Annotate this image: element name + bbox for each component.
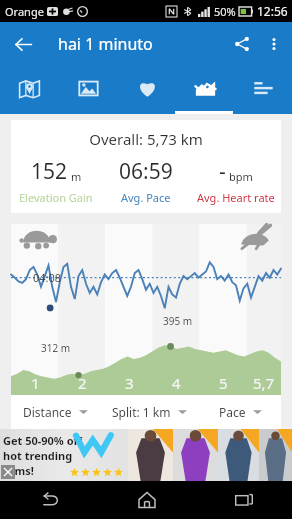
- button[interactable]: Recent apps: [195, 481, 292, 519]
- button[interactable]: Share: [225, 27, 259, 61]
- button[interactable]: Splits: [234, 66, 292, 114]
- staticText: 50%: [214, 4, 236, 19]
- button[interactable]: Split: 1 km: [100, 395, 199, 429]
- button[interactable]: Close ad: [1, 465, 15, 479]
- button[interactable]: Distance: [11, 395, 100, 429]
- staticText: hot trending: [3, 448, 73, 463]
- staticText: Split: 1 km: [112, 404, 171, 420]
- staticText: Orange: [5, 4, 44, 19]
- staticText: -: [219, 157, 226, 186]
- button[interactable]: Back: [6, 27, 40, 61]
- staticText: Get 50-90% off: [3, 433, 83, 448]
- staticText: Elevation Gain: [19, 190, 93, 205]
- staticText: 06:59: [119, 157, 173, 186]
- staticText: 312 m: [41, 341, 71, 355]
- staticText: 5: [219, 373, 228, 393]
- staticText: 395 m: [163, 314, 193, 328]
- button[interactable]: Back: [0, 481, 98, 519]
- staticText: 152: [31, 157, 68, 186]
- button[interactable]: Photos: [59, 66, 118, 114]
- staticText: hai 1 minuto: [58, 33, 153, 55]
- staticText: Overall: 5,73 km: [11, 129, 281, 149]
- staticText: Avg. Pace: [121, 190, 171, 205]
- button[interactable]: Charts: [176, 66, 234, 114]
- button[interactable]: Home: [98, 481, 195, 519]
- button[interactable]: More options: [259, 29, 289, 59]
- staticText: Distance: [23, 404, 72, 420]
- staticText: 5,7: [253, 373, 275, 393]
- staticText: 2: [78, 373, 87, 393]
- staticText: 4: [172, 373, 181, 393]
- staticText: 04:08: [33, 270, 62, 285]
- staticText: Avg. Heart rate: [197, 190, 275, 205]
- staticText: Pace: [219, 404, 246, 420]
- staticText: m: [71, 169, 82, 184]
- button[interactable]: Overall: 5,73 km: [11, 120, 281, 213]
- staticText: bpm: [229, 169, 253, 184]
- staticText: 12:56: [257, 3, 288, 19]
- button[interactable]: Get 50-90% off: [0, 429, 292, 481]
- staticText: 3: [125, 373, 134, 393]
- button[interactable]: Heart rate: [118, 66, 176, 114]
- staticText: ms!: [3, 463, 34, 478]
- button[interactable]: Map route: [0, 66, 59, 114]
- staticText: 1: [31, 373, 40, 393]
- button[interactable]: Pace: [199, 395, 281, 429]
